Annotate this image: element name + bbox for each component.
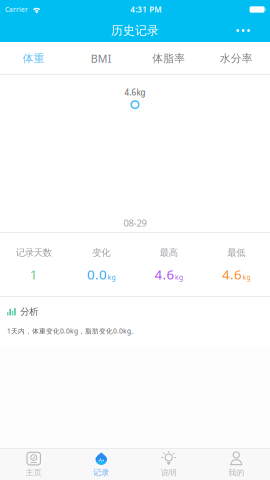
staticText: 变化 (92, 247, 110, 258)
staticText: 1 (30, 265, 38, 283)
staticText: Carrier (5, 5, 28, 14)
staticText: BMI (91, 51, 112, 66)
staticText: 08-29 (123, 217, 146, 229)
staticText: kg (242, 273, 250, 282)
staticText: 4.6kg (124, 87, 145, 98)
staticText: 4.6 (155, 265, 175, 283)
staticText: 说明 (161, 468, 177, 477)
button[interactable]: 水分率 (202, 42, 270, 75)
button[interactable]: BMI (67, 42, 135, 75)
button[interactable]: More options (226, 22, 260, 39)
button[interactable]: 体重 (0, 42, 67, 75)
staticText: 我的 (228, 468, 244, 477)
staticText: 最低 (227, 247, 245, 258)
button[interactable]: 体脂率 (135, 42, 202, 75)
staticText: 体脂率 (152, 52, 185, 65)
staticText: 0.0 (87, 265, 107, 283)
staticText: 体重 (23, 52, 45, 65)
staticText: 分析 (20, 306, 38, 317)
staticText: kg (107, 273, 115, 282)
staticText: 1天内，体重变化0.0kg，脂肪变化0.0kg。 (7, 326, 138, 335)
staticText: 最高 (160, 247, 178, 258)
button[interactable]: 我的 (202, 448, 270, 480)
staticText: 记录 (93, 468, 109, 477)
staticText: 水分率 (220, 52, 253, 65)
staticText: 4:31 PM (130, 4, 161, 15)
staticText: 4.6 (222, 265, 242, 283)
button[interactable]: 主页 (0, 448, 67, 480)
staticText: 主页 (26, 468, 42, 477)
staticText: kg (175, 273, 183, 282)
button[interactable]: 记录 (67, 448, 135, 480)
staticText: 记录天数 (16, 247, 52, 258)
staticText: 历史记录 (111, 23, 159, 38)
button[interactable]: 说明 (135, 448, 202, 480)
